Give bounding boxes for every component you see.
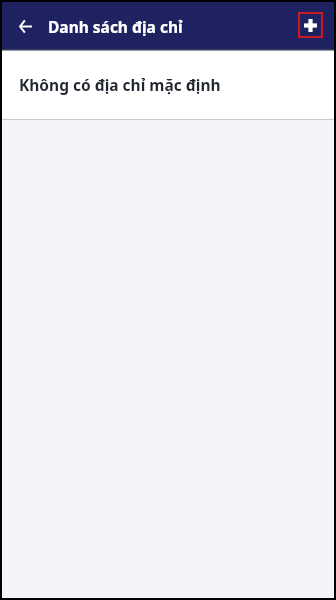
button[interactable]: Back [9,10,41,42]
staticText: Danh sách địa chỉ [48,16,183,37]
button[interactable]: Add address [298,12,323,38]
button[interactable]: Không có địa chỉ mặc định [2,51,334,119]
staticText: Không có địa chỉ mặc định [19,74,221,95]
